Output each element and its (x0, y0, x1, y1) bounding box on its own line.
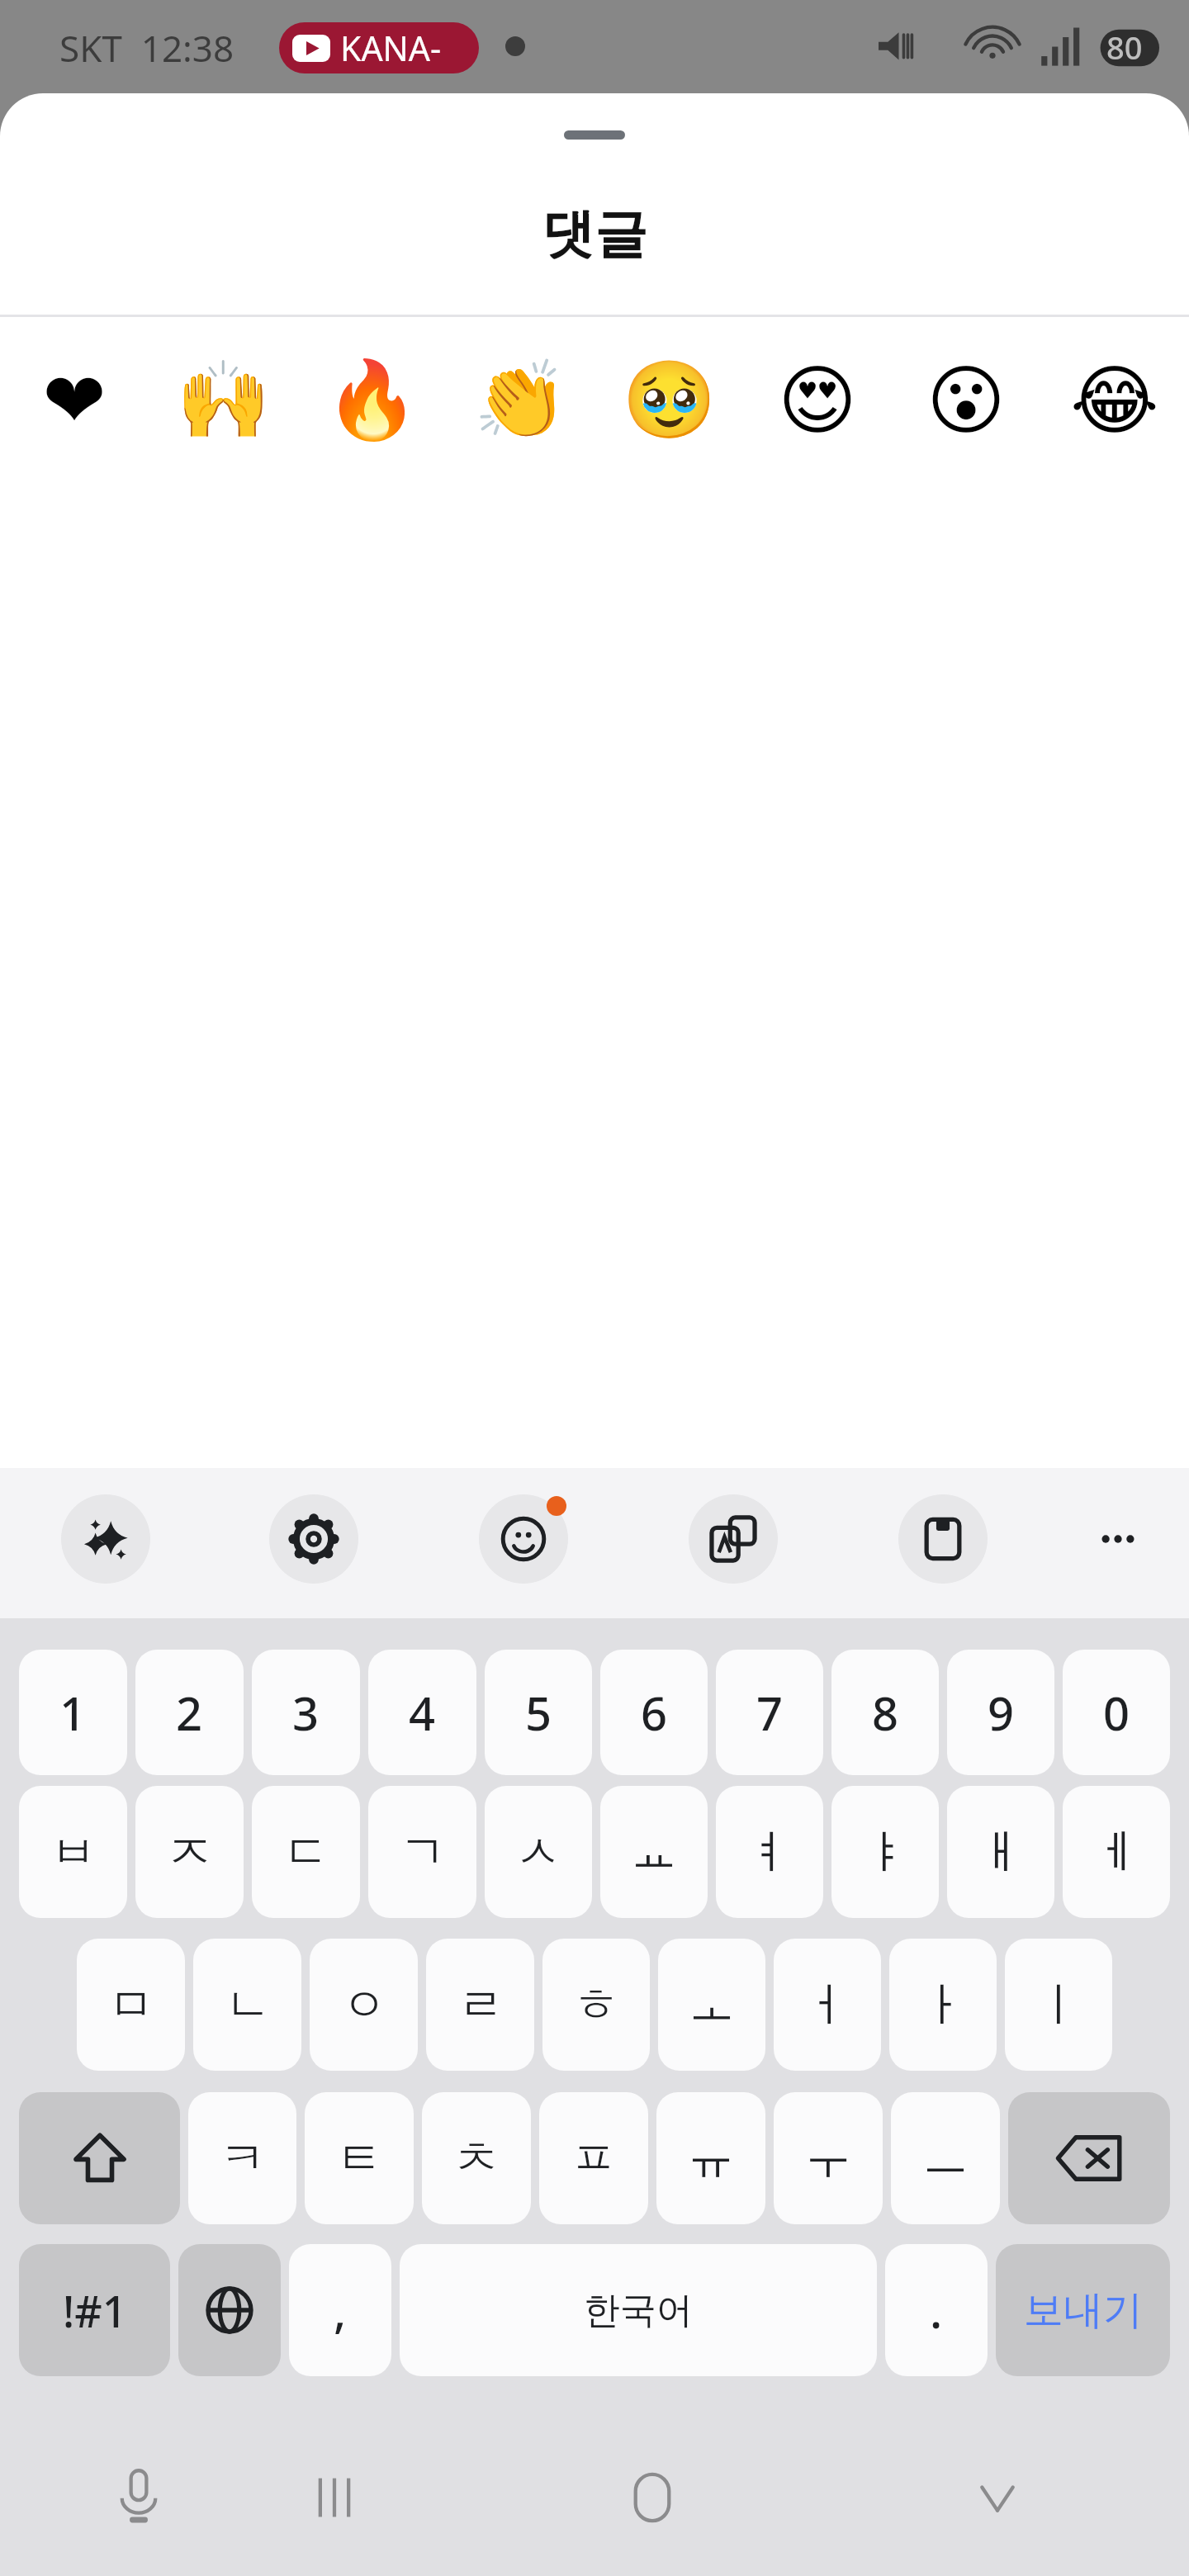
staticText: ㅓ (804, 1976, 850, 2034)
button[interactable]: 4 (368, 1650, 476, 1775)
button[interactable]: Settings (269, 1494, 358, 1584)
staticText: ㅠ (688, 2129, 734, 2188)
button[interactable]: . (885, 2244, 988, 2376)
button[interactable]: 한국어 (400, 2244, 877, 2376)
staticText: !#1 (63, 2281, 127, 2340)
staticText: 4 (409, 1681, 436, 1744)
staticText: ㅡ (922, 2129, 969, 2188)
button[interactable]: ㅅ (485, 1786, 592, 1918)
button[interactable]: ㅜ (774, 2092, 883, 2224)
button[interactable]: ㅕ (716, 1786, 823, 1918)
button[interactable]: 6 (600, 1650, 708, 1775)
button[interactable]: ㅑ (831, 1786, 939, 1918)
button[interactable]: ㄷ (252, 1786, 360, 1918)
button[interactable]: ㅎ (542, 1939, 650, 2071)
button[interactable]: ㅊ (422, 2092, 531, 2224)
button[interactable]: AI suggestions (61, 1494, 150, 1584)
staticText: 5 (525, 1681, 552, 1744)
button[interactable]: React 👏 (446, 330, 594, 471)
staticText: 보내기 (1024, 2285, 1143, 2335)
button[interactable]: ㅗ (658, 1939, 765, 2071)
button[interactable]: 보내기 (996, 2244, 1170, 2376)
button[interactable]: 8 (831, 1650, 939, 1775)
staticText: 2 (176, 1681, 203, 1744)
staticText: ㅏ (920, 1976, 966, 2034)
button[interactable]: React 🙌 (149, 330, 297, 471)
button[interactable]: Shift (19, 2092, 180, 2224)
button[interactable]: 2 (135, 1650, 244, 1775)
staticText: ㅌ (336, 2129, 382, 2188)
staticText: ㅕ (746, 1823, 793, 1882)
button[interactable]: YouTube notification (279, 22, 479, 73)
staticText: ㅇ (341, 1976, 387, 2034)
button[interactable]: 5 (485, 1650, 592, 1775)
staticText: ㅍ (571, 2129, 617, 2188)
button[interactable]: Change language (178, 2244, 281, 2376)
button[interactable]: Emoji (479, 1494, 568, 1584)
button[interactable]: ㅔ (1063, 1786, 1170, 1918)
button[interactable]: Hide keyboard (923, 2419, 1072, 2576)
staticText: 😮 (926, 357, 1006, 445)
button[interactable]: 0 (1063, 1650, 1170, 1775)
button[interactable]: Backspace (1008, 2092, 1170, 2224)
button[interactable]: Translate (689, 1494, 778, 1584)
button[interactable]: ㅂ (19, 1786, 127, 1918)
staticText: 3 (292, 1681, 320, 1744)
button[interactable]: React ❤️ (0, 330, 149, 471)
button[interactable]: 3 (252, 1650, 360, 1775)
button[interactable]: ㅏ (889, 1939, 997, 2071)
button[interactable]: !#1 (19, 2244, 170, 2376)
button[interactable]: React 😮 (892, 330, 1040, 471)
staticText: 😂 (1070, 357, 1159, 445)
button[interactable]: ㅍ (539, 2092, 648, 2224)
staticText: ㅑ (862, 1823, 908, 1882)
button[interactable]: ㅡ (891, 2092, 1000, 2224)
staticText: KANA- (340, 25, 442, 71)
button[interactable]: React 🔥 (297, 330, 446, 471)
button[interactable]: ㅌ (305, 2092, 414, 2224)
button[interactable]: ㅓ (774, 1939, 881, 2071)
staticText: 8 (872, 1681, 899, 1744)
staticText: ㅈ (167, 1823, 213, 1882)
staticText: 6 (641, 1681, 668, 1744)
button[interactable]: ㄱ (368, 1786, 476, 1918)
button[interactable]: ㅠ (656, 2092, 765, 2224)
staticText: 1 (59, 1681, 87, 1744)
staticText: ㄹ (457, 1976, 504, 2034)
button[interactable]: Clipboard (898, 1494, 988, 1584)
button[interactable]: Recents (260, 2419, 409, 2576)
staticText: ㅊ (453, 2129, 500, 2188)
button[interactable]: ㅣ (1005, 1939, 1112, 2071)
staticText: ㅔ (1093, 1823, 1139, 1882)
staticText: SKT 12:38 (59, 23, 234, 73)
button[interactable]: ㅛ (600, 1786, 708, 1918)
staticText: ❤️ (42, 357, 107, 445)
staticText: ㅛ (631, 1823, 677, 1882)
button[interactable]: React 🥹 (594, 330, 743, 471)
staticText: ㅗ (689, 1976, 735, 2034)
button[interactable]: ㅐ (947, 1786, 1054, 1918)
button[interactable]: 9 (947, 1650, 1054, 1775)
button[interactable]: More options (1073, 1494, 1163, 1584)
button[interactable]: , (289, 2244, 391, 2376)
button[interactable]: Home (578, 2419, 727, 2576)
button[interactable]: 1 (19, 1650, 127, 1775)
staticText: 9 (988, 1681, 1015, 1744)
button[interactable]: ㅋ (188, 2092, 296, 2224)
button[interactable]: ㄴ (193, 1939, 301, 2071)
button[interactable]: ㅈ (135, 1786, 244, 1918)
staticText: 0 (1103, 1681, 1130, 1744)
button[interactable]: React 😍 (743, 330, 892, 471)
button[interactable]: React 😂 (1040, 330, 1189, 471)
staticText: ㅎ (573, 1976, 619, 2034)
staticText: 🙌 (176, 356, 271, 445)
button[interactable]: ㅁ (77, 1939, 185, 2071)
button[interactable]: ㄹ (426, 1939, 534, 2071)
button[interactable]: 7 (716, 1650, 823, 1775)
button[interactable]: ㅇ (310, 1939, 418, 2071)
staticText: ㄷ (283, 1823, 329, 1882)
staticText: 😍 (778, 357, 857, 445)
staticText: 🥹 (622, 356, 717, 445)
staticText: ㅣ (1035, 1976, 1082, 2034)
button[interactable]: Voice input (64, 2419, 213, 2576)
